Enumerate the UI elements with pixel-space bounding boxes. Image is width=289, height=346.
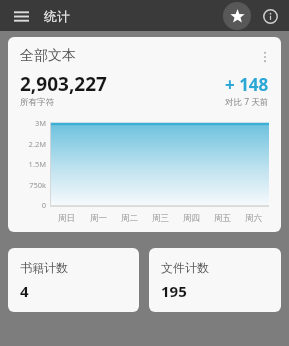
staticText: 4 bbox=[20, 281, 29, 301]
button[interactable]: 书籍计数 bbox=[8, 248, 139, 312]
staticText: 1.5M bbox=[28, 159, 46, 169]
staticText: 文件计数 bbox=[161, 260, 209, 275]
staticText: 周一 bbox=[90, 213, 107, 224]
button[interactable]: 文件计数 bbox=[149, 248, 281, 312]
button[interactable]: More options bbox=[255, 47, 275, 67]
staticText: 对比 7 天前 bbox=[225, 96, 269, 108]
staticText: 195 bbox=[161, 281, 187, 301]
button[interactable]: Favorite bbox=[223, 2, 251, 30]
staticText: 0 bbox=[41, 200, 46, 210]
staticText: 周五 bbox=[214, 213, 231, 224]
staticText: 全部文本 bbox=[20, 47, 76, 65]
button[interactable]: Menu bbox=[8, 3, 34, 29]
staticText: 2.2M bbox=[28, 139, 46, 149]
staticText: 周六 bbox=[245, 213, 262, 224]
staticText: 2,903,227 bbox=[20, 71, 107, 97]
staticText: 所有字符 bbox=[20, 97, 54, 108]
button[interactable]: Info bbox=[259, 5, 281, 27]
staticText: 周日 bbox=[58, 213, 75, 224]
staticText: 3M bbox=[34, 118, 46, 128]
staticText: 750k bbox=[29, 180, 46, 190]
button[interactable]: 全部文本 bbox=[8, 37, 281, 232]
staticText: 周四 bbox=[183, 213, 200, 224]
staticText: 书籍计数 bbox=[20, 260, 68, 275]
staticText: 周二 bbox=[121, 213, 138, 224]
staticText: 统计 bbox=[44, 8, 70, 24]
staticText: 周三 bbox=[152, 213, 169, 224]
staticText: + 148 bbox=[225, 73, 269, 96]
